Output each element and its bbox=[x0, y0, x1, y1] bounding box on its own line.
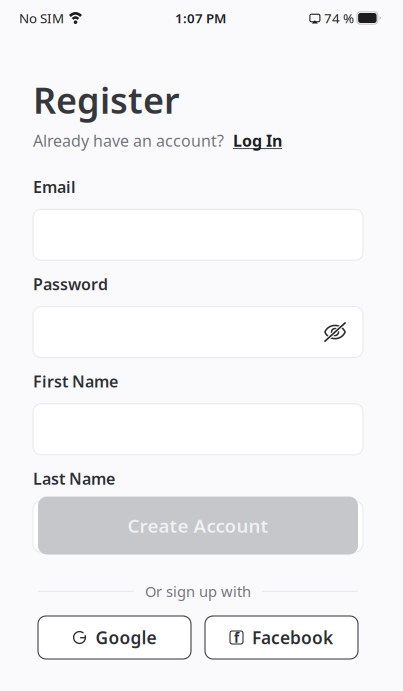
staticText: Create Account bbox=[127, 513, 268, 538]
staticText: 74 % bbox=[324, 9, 354, 27]
staticText: f bbox=[234, 629, 239, 646]
staticText: 1:07 PM bbox=[175, 9, 226, 27]
staticText: Or sign up with bbox=[145, 581, 251, 601]
button[interactable]: Create Account bbox=[38, 496, 358, 554]
button[interactable]: f bbox=[205, 616, 358, 659]
staticText: Register bbox=[33, 76, 180, 124]
staticText: Last Name bbox=[33, 468, 115, 489]
staticText: Password bbox=[33, 273, 108, 294]
staticText: Log In bbox=[233, 130, 282, 151]
button[interactable]: Log In bbox=[233, 130, 282, 151]
staticText: Already have an account? bbox=[33, 130, 224, 151]
staticText: First Name bbox=[33, 371, 118, 392]
staticText: Google bbox=[95, 626, 156, 649]
staticText: No SIM bbox=[19, 9, 64, 27]
staticText: Facebook bbox=[252, 626, 333, 649]
staticText: Email bbox=[33, 176, 76, 197]
button[interactable]: Google bbox=[38, 616, 191, 659]
